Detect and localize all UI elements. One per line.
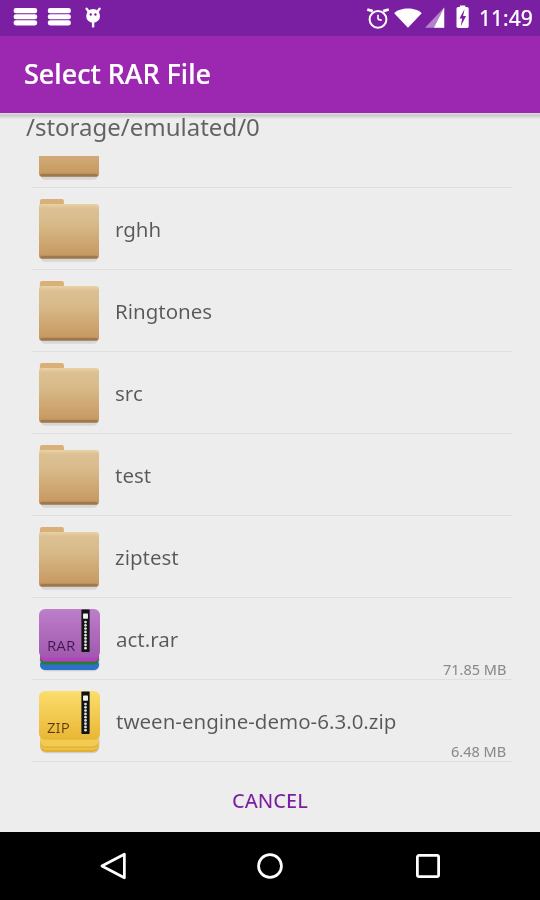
staticText: Select RAR File (24, 55, 211, 92)
staticText: tween-engine-demo-6.3.0.zip (116, 707, 397, 735)
button[interactable]: Recent apps (397, 836, 459, 896)
staticText: 11:49 (479, 4, 533, 33)
staticText: /storage/emulated/0 (26, 110, 260, 143)
button[interactable]: ziptest (0, 516, 540, 598)
button[interactable]: Home (239, 836, 301, 896)
staticText: 71.85 MB (443, 659, 507, 679)
button[interactable]: ZIP (0, 680, 540, 762)
button[interactable]: Ringtones (0, 270, 540, 352)
staticText: ziptest (115, 543, 179, 571)
staticText: act.rar (116, 625, 179, 653)
staticText: CANCEL (232, 787, 308, 814)
button[interactable]: src (0, 352, 540, 434)
button[interactable] (0, 156, 540, 188)
button[interactable]: test (0, 434, 540, 516)
staticText: ZIP (47, 717, 70, 737)
staticText: Ringtones (115, 297, 213, 325)
button[interactable]: rghh (0, 188, 540, 270)
staticText: RAR (47, 635, 76, 655)
staticText: rghh (115, 215, 162, 243)
staticText: test (115, 461, 152, 489)
staticText: src (115, 379, 143, 407)
button[interactable]: Back (82, 836, 144, 896)
button[interactable]: CANCEL (0, 762, 540, 832)
staticText: 6.48 MB (451, 741, 507, 761)
button[interactable]: RAR (0, 598, 540, 680)
